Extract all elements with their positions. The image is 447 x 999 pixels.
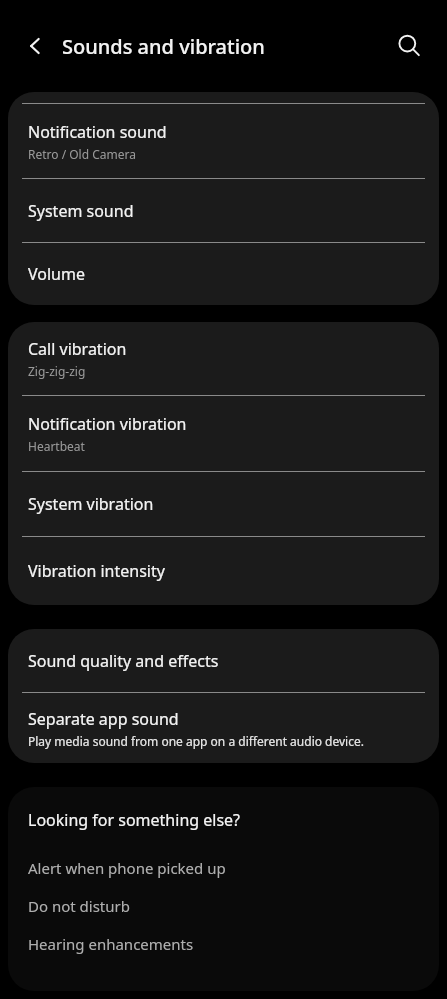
button[interactable]: Do not disturb (8, 887, 439, 925)
button[interactable]: Back (14, 24, 58, 68)
button[interactable]: System vibration (8, 472, 439, 536)
staticText: Separate app sound (28, 708, 179, 730)
staticText: Zig-zig-zig (28, 363, 86, 379)
staticText: System sound (28, 200, 134, 222)
staticText: Looking for something else? (28, 809, 241, 831)
button[interactable]: Call vibration (8, 322, 439, 395)
staticText: System vibration (28, 493, 154, 515)
staticText: Retro / Old Camera (28, 146, 136, 162)
staticText: Alert when phone picked up (28, 858, 226, 878)
staticText: Notification vibration (28, 413, 187, 435)
button[interactable]: Hearing enhancements (8, 925, 439, 963)
button[interactable]: Alert when phone picked up (8, 849, 439, 887)
button[interactable]: Notification vibration (8, 396, 439, 471)
staticText: Notification sound (28, 121, 167, 143)
button[interactable]: Search (387, 24, 431, 68)
staticText: Heartbeat (28, 438, 85, 454)
staticText: Do not disturb (28, 896, 130, 916)
staticText: Play media sound from one app on a diffe… (28, 733, 364, 749)
button[interactable]: System sound (8, 179, 439, 242)
staticText: Hearing enhancements (28, 934, 194, 954)
button[interactable]: Volume (8, 243, 439, 305)
staticText: Sound quality and effects (28, 650, 219, 672)
button[interactable]: Vibration intensity (8, 537, 439, 605)
staticText: Call vibration (28, 338, 127, 360)
staticText: Vibration intensity (28, 560, 165, 582)
button[interactable]: Sound quality and effects (8, 629, 439, 692)
staticText: Volume (28, 263, 85, 285)
button[interactable]: Separate app sound (8, 693, 439, 763)
staticText: Sounds and vibration (62, 33, 387, 60)
button[interactable]: Notification sound (8, 104, 439, 178)
